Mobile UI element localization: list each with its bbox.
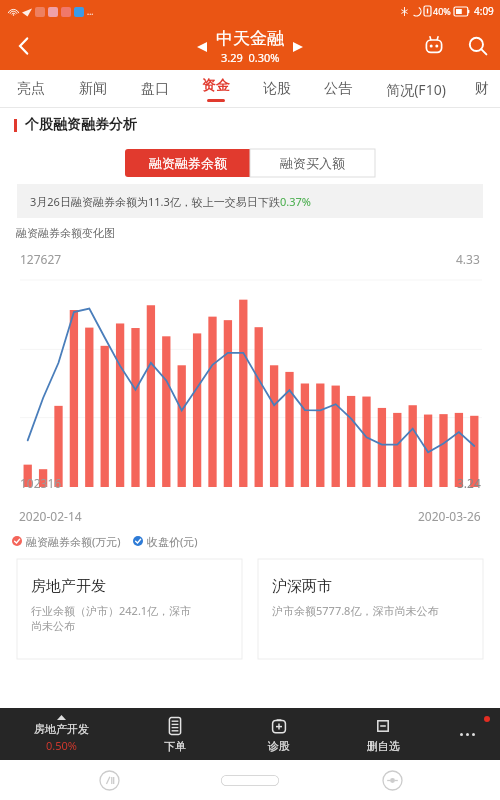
staticText: 3.29 0.30% — [221, 50, 280, 65]
button[interactable]: Back — [0, 22, 48, 70]
button[interactable]: Home — [217, 762, 283, 798]
staticText: 4.33 — [456, 251, 480, 267]
button[interactable]: AI assistant — [412, 24, 456, 68]
staticText: 论股 — [263, 80, 291, 98]
staticText: 0.50% — [46, 738, 77, 753]
button[interactable]: 诊股 — [227, 708, 331, 760]
staticText: 房地产开发 — [31, 577, 106, 596]
staticText: 127627 — [20, 251, 62, 267]
button[interactable]: More options — [435, 708, 500, 760]
staticText: 资金 — [202, 77, 230, 95]
staticText: 收盘价(元) — [147, 534, 198, 549]
button[interactable]: 财 — [463, 70, 500, 108]
staticText: 沪深两市 — [272, 577, 332, 596]
button[interactable]: Recents — [91, 762, 127, 798]
button[interactable]: 公告 — [307, 70, 368, 108]
button[interactable]: 盘口 — [124, 70, 185, 108]
staticText: 2020-03-26 — [418, 508, 481, 524]
staticText: ... — [87, 6, 94, 17]
staticText: 简况(F10) — [386, 80, 446, 99]
staticText: 中天金融 — [216, 28, 284, 49]
button[interactable]: 房地产开发 — [0, 708, 123, 760]
staticText: 沪市余额5777.8亿，深市尚未公布 — [272, 603, 439, 618]
staticText: 0.37% — [280, 194, 311, 209]
staticText: 财 — [475, 80, 489, 98]
staticText: 102316 — [20, 475, 62, 491]
staticText: 新闻 — [79, 80, 107, 98]
button[interactable]: 资金 — [185, 70, 246, 108]
staticText: 40% — [433, 5, 451, 17]
staticText: 公告 — [324, 80, 352, 98]
button[interactable]: 新闻 — [62, 70, 124, 108]
staticText: 诊股 — [268, 739, 290, 753]
staticText: 删自选 — [367, 739, 400, 753]
button[interactable]: Search — [456, 24, 500, 68]
staticText: 2020-02-14 — [19, 508, 82, 524]
staticText: 3.24 — [457, 475, 481, 491]
button[interactable]: Next stock — [284, 33, 312, 61]
button[interactable]: 删自选 — [331, 708, 435, 760]
button[interactable]: 论股 — [246, 70, 307, 108]
button[interactable]: 下单 — [123, 708, 227, 760]
staticText: 融资买入额 — [280, 155, 345, 171]
staticText: 融资融券余额(万元) — [26, 534, 121, 549]
button[interactable]: 亮点 — [0, 70, 62, 108]
staticText: 4:09 — [474, 4, 494, 18]
staticText: 个股融资融券分析 — [25, 116, 137, 134]
staticText: 融资融券余额变化图 — [16, 226, 115, 240]
staticText: 3月26日融资融券余额为11.3亿，较上一交易日下跌 — [30, 194, 280, 209]
staticText: 融资融券余额 — [149, 155, 227, 171]
staticText: 亮点 — [17, 80, 45, 98]
staticText: 房地产开发 — [34, 722, 89, 736]
staticText: 下单 — [164, 739, 186, 753]
button[interactable]: 融资买入额 — [250, 149, 375, 177]
button[interactable]: Previous stock — [188, 33, 216, 61]
staticText: 盘口 — [141, 80, 169, 98]
staticText: 行业余额（沪市）242.1亿，深市 尚未公布 — [31, 603, 192, 633]
button[interactable]: 简况(F10) — [368, 70, 463, 108]
button[interactable]: 沪深两市 — [258, 559, 483, 659]
button[interactable]: 房地产开发 — [17, 559, 242, 659]
button[interactable]: 融资融券余额 — [125, 149, 250, 177]
button[interactable]: Back — [374, 762, 410, 798]
